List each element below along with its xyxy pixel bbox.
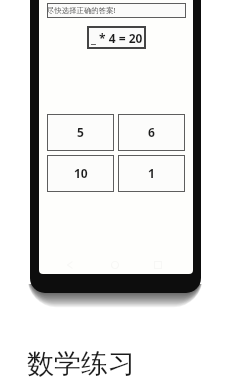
staticText: 5 [77, 124, 84, 140]
staticText: 数学练习 [27, 347, 135, 381]
button[interactable]: 尽快选择正确的答案! [47, 3, 186, 18]
staticText: 尽快选择正确的答案! [47, 5, 116, 15]
staticText: 6 [148, 124, 155, 140]
button[interactable]: 10 [47, 155, 114, 192]
button[interactable]: 6 [118, 114, 185, 151]
staticText: _ * 4 = 20 [91, 30, 143, 46]
button[interactable]: 5 [47, 114, 114, 151]
button[interactable]: 1 [118, 155, 185, 192]
staticText: 10 [74, 165, 88, 181]
staticText: 1 [148, 165, 155, 181]
